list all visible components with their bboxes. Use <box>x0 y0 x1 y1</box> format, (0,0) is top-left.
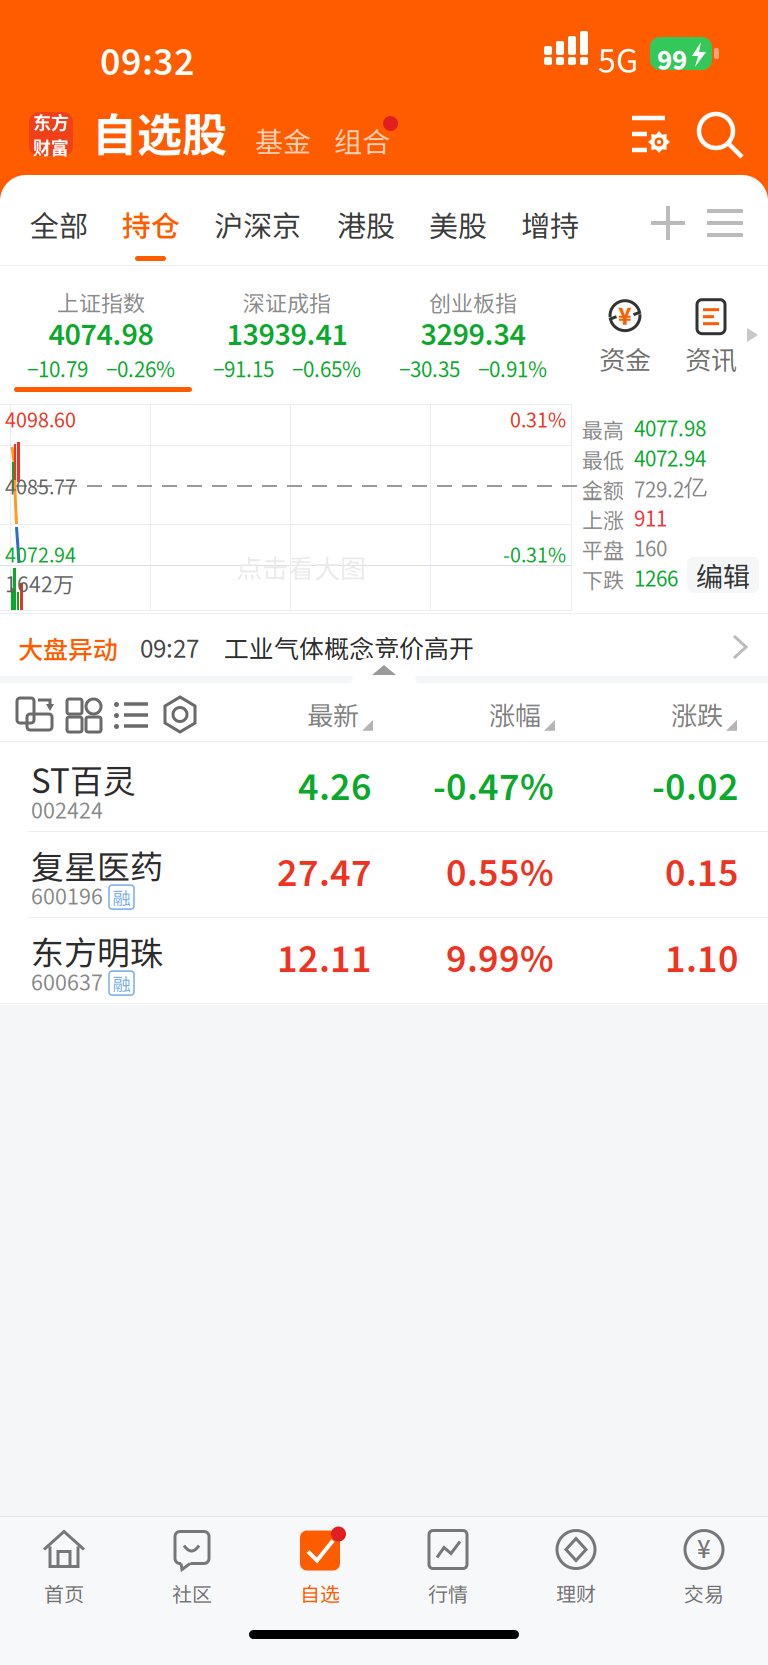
button[interactable]: 深证成指 <box>187 288 387 388</box>
staticText: 理财 <box>556 1578 596 1607</box>
staticText: −0.91% <box>478 354 547 386</box>
staticText: −91.15 <box>213 354 274 386</box>
staticText: 融 <box>112 884 130 910</box>
button[interactable]: 涨幅 <box>375 686 555 742</box>
staticText: 编辑 <box>696 555 750 595</box>
staticText: 最高 <box>582 414 624 444</box>
staticText: 160 <box>634 533 667 566</box>
button[interactable]: Grid view <box>62 692 106 736</box>
staticText: 涨幅 <box>489 695 541 733</box>
staticText: 1.10 <box>665 931 739 988</box>
button[interactable]: 美股 <box>424 189 492 259</box>
staticText: 002424 <box>31 794 103 828</box>
staticText: 港股 <box>337 203 395 245</box>
staticText: 4.26 <box>298 759 372 816</box>
staticText: 最新 <box>307 695 359 733</box>
staticText: 4072.94 <box>634 443 706 476</box>
button[interactable]: 复星医药 <box>0 831 768 917</box>
staticText: −10.79 <box>27 354 88 386</box>
staticText: 13939.41 <box>226 312 347 358</box>
staticText: 1642万 <box>5 568 74 598</box>
staticText: −0.65% <box>292 354 361 386</box>
button[interactable]: 创业板指 <box>373 288 573 388</box>
staticText: 0.55% <box>446 845 554 902</box>
staticText: −30.35 <box>399 354 460 386</box>
button[interactable]: Sort settings <box>630 109 674 157</box>
staticText: ¥ <box>618 298 632 335</box>
staticText: −0.26% <box>106 354 175 386</box>
button[interactable]: Settings <box>158 692 202 736</box>
staticText: 4072.94 <box>5 540 76 571</box>
staticText: 工业气体概念竞价高开 <box>224 629 474 665</box>
button[interactable]: 增持 <box>516 189 584 259</box>
staticText: 组合 <box>334 120 390 160</box>
button[interactable]: 涨跌 <box>557 686 737 742</box>
button[interactable]: Search <box>698 113 744 159</box>
staticText: 社区 <box>172 1578 212 1607</box>
staticText: 4077.98 <box>634 413 706 446</box>
staticText: 4074.98 <box>48 312 153 358</box>
staticText: 上证指数 <box>57 286 145 318</box>
staticText: 增持 <box>521 203 579 245</box>
staticText: ¥ <box>697 1530 711 1569</box>
button[interactable]: 理财 <box>512 1520 640 1616</box>
button[interactable]: ¥ <box>570 292 680 384</box>
button[interactable]: 港股 <box>332 189 400 259</box>
button[interactable]: 全部 <box>25 189 93 259</box>
button[interactable]: 资讯 <box>656 292 766 384</box>
staticText: 上涨 <box>582 504 624 534</box>
staticText: 交易 <box>684 1578 724 1607</box>
staticText: 全部 <box>30 203 88 245</box>
button[interactable]: 沪深京 <box>209 189 306 259</box>
staticText: 融 <box>112 970 130 996</box>
button[interactable]: 基金 <box>246 114 320 166</box>
button[interactable]: ST百灵 <box>0 745 768 831</box>
button[interactable]: List view <box>110 692 154 736</box>
staticText: 3299.34 <box>420 312 525 358</box>
staticText: 持仓 <box>122 203 180 245</box>
staticText: 4085.77 <box>5 472 76 503</box>
staticText: 大盘异动 <box>18 630 118 666</box>
button[interactable]: ¥ <box>640 1520 768 1616</box>
button[interactable]: 自选 <box>256 1520 384 1616</box>
button[interactable]: 编辑 <box>687 557 759 593</box>
button[interactable]: Compare <box>14 692 58 736</box>
staticText: 1266 <box>634 563 678 596</box>
staticText: 复星医药 <box>31 841 163 889</box>
button[interactable]: 大盘异动 <box>0 614 768 680</box>
staticText: 4098.60 <box>5 405 76 436</box>
button[interactable]: 持仓 <box>117 189 185 259</box>
button[interactable]: 行情 <box>384 1520 512 1616</box>
button[interactable]: 上证指数 <box>1 288 201 388</box>
staticText: 沪深京 <box>214 203 301 245</box>
button[interactable]: 首页 <box>0 1520 128 1616</box>
staticText: 金额 <box>582 474 624 504</box>
staticText: 东方 <box>33 108 69 134</box>
staticText: 基金 <box>255 120 311 160</box>
staticText: 资讯 <box>685 340 737 377</box>
staticText: 600637 <box>31 966 103 1000</box>
staticText: 5G <box>598 36 638 87</box>
button[interactable]: 组合 <box>325 114 405 166</box>
staticText: 涨跌 <box>671 695 723 733</box>
button[interactable]: Add <box>646 201 690 245</box>
staticText: 0.15 <box>665 845 739 902</box>
staticText: -0.47% <box>433 759 554 816</box>
staticText: ST百灵 <box>31 755 136 803</box>
staticText: 首页 <box>44 1578 84 1607</box>
button[interactable]: 东方明珠 <box>0 917 768 1003</box>
staticText: 12.11 <box>277 931 372 988</box>
staticText: 财富 <box>33 133 69 160</box>
button[interactable]: 社区 <box>128 1520 256 1616</box>
staticText: 创业板指 <box>429 286 517 318</box>
staticText: 600196 <box>31 880 103 914</box>
staticText: 0.31% <box>510 405 566 436</box>
button[interactable]: 最新 <box>193 686 373 742</box>
staticText: 09:32 <box>100 34 195 91</box>
button[interactable]: More <box>705 205 745 241</box>
staticText: 自选股 <box>92 99 227 164</box>
staticText: 深证成指 <box>243 286 331 318</box>
staticText: 09:27 <box>140 630 199 668</box>
staticText: -0.31% <box>503 540 566 571</box>
staticText: 27.47 <box>277 845 372 902</box>
